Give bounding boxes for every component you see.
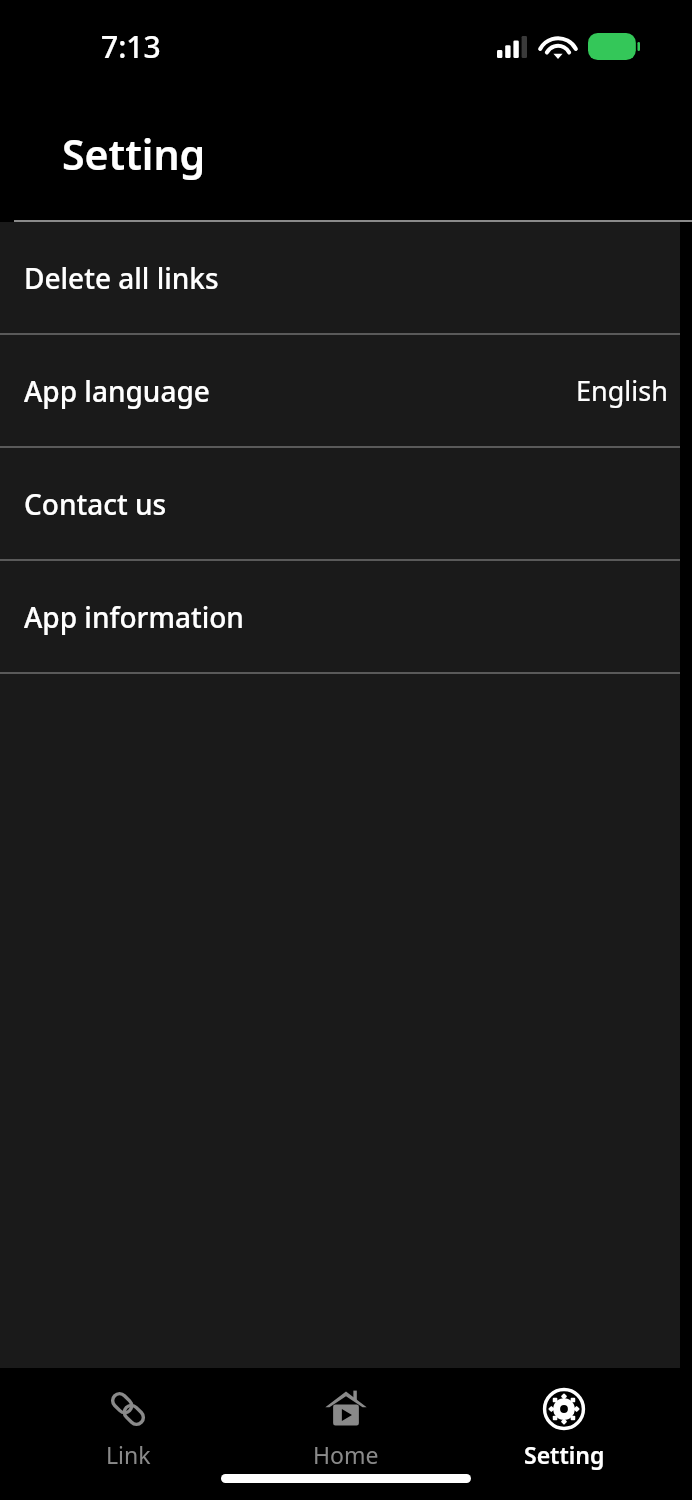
staticText: App information (24, 598, 244, 636)
button[interactable]: App information (0, 561, 680, 672)
staticText: Delete all links (24, 259, 219, 297)
staticText: Contact us (24, 485, 167, 523)
button[interactable]: Delete all links (0, 222, 680, 333)
staticText: Setting (62, 126, 206, 182)
staticText: English (576, 372, 668, 409)
other: Setting (541, 1386, 587, 1432)
staticText: Home (313, 1439, 379, 1470)
staticText: Setting (524, 1439, 605, 1470)
other: Link (105, 1386, 151, 1432)
other: Home (323, 1386, 369, 1432)
button[interactable]: Link (38, 1368, 218, 1470)
button[interactable]: App language (0, 335, 680, 446)
staticText: App language (24, 372, 210, 410)
button[interactable]: Contact us (0, 448, 680, 559)
button[interactable]: Setting (474, 1368, 654, 1470)
button[interactable]: Home (256, 1368, 436, 1470)
staticText: Link (106, 1439, 151, 1470)
staticText: 7:13 (101, 26, 161, 67)
